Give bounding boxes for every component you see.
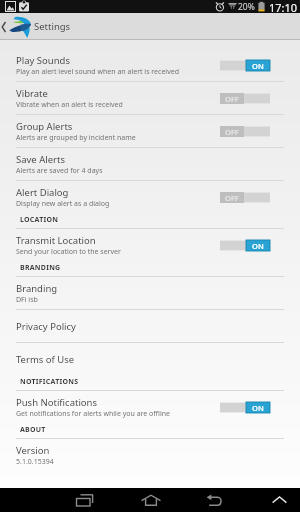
button[interactable]: Alert Dialog <box>0 181 300 213</box>
staticText: Alert Dialog <box>16 186 69 199</box>
staticText: NOTIFICATIONS <box>20 377 79 387</box>
staticText: Get notifications for alerts while you a… <box>16 409 171 419</box>
button[interactable]: On <box>220 240 270 251</box>
button[interactable]: Off <box>220 126 270 137</box>
staticText: Alerts are grouped by incident name <box>16 133 136 143</box>
staticText: LOCATION <box>20 215 59 225</box>
button[interactable]: Transmit Location <box>0 229 300 261</box>
staticText: Play an alert level sound when an alert … <box>16 67 179 77</box>
button[interactable]: Branding <box>0 277 300 309</box>
staticText: ABOUT <box>20 425 46 435</box>
button[interactable]: Navigate up <box>0 13 300 40</box>
staticText: Save Alerts <box>16 153 65 166</box>
button[interactable]: Off <box>220 93 270 104</box>
staticText: ON <box>252 61 264 71</box>
staticText: Alerts are saved for 4 days <box>16 166 103 176</box>
staticText: Terms of Use <box>16 353 75 366</box>
staticText: Vibrate when an alert is received <box>16 100 123 110</box>
button[interactable]: On <box>220 402 270 413</box>
staticText: Transmit Location <box>16 234 96 247</box>
staticText: Version <box>16 444 50 457</box>
staticText: OFF <box>225 127 239 137</box>
button[interactable]: Off <box>220 192 270 203</box>
button[interactable]: Back <box>193 488 237 512</box>
button[interactable]: Play Sounds <box>0 49 300 81</box>
staticText: Branding <box>16 282 58 295</box>
button[interactable]: Home <box>129 488 173 512</box>
staticText: 20% <box>238 1 255 13</box>
button[interactable]: Version <box>0 439 300 471</box>
button[interactable]: Push Notifications <box>0 391 300 423</box>
staticText: Privacy Policy <box>16 320 76 333</box>
staticText: 5.1.0.15394 <box>16 457 54 467</box>
button[interactable]: Recent apps <box>62 488 106 512</box>
staticText: DFi isb <box>16 295 38 305</box>
staticText: ON <box>252 403 264 413</box>
button[interactable]: On <box>220 60 270 71</box>
staticText: Send your location to the server <box>16 247 121 257</box>
staticText: Play Sounds <box>16 54 70 67</box>
button[interactable]: Vibrate <box>0 82 300 114</box>
staticText: Push Notifications <box>16 396 98 409</box>
button[interactable]: Save Alerts <box>0 148 300 180</box>
staticText: 17:10 <box>269 0 298 13</box>
button[interactable]: Hide navigation bar <box>258 488 300 512</box>
staticText: Group Alerts <box>16 120 73 133</box>
staticText: ON <box>252 241 264 251</box>
staticText: Settings <box>34 20 71 33</box>
button[interactable]: Terms of Use <box>0 343 300 375</box>
staticText: OFF <box>225 94 239 104</box>
staticText: Vibrate <box>16 87 48 100</box>
staticText: Display new alert as a dialog <box>16 199 110 209</box>
button[interactable]: Privacy Policy <box>0 310 300 342</box>
staticText: OFF <box>225 193 239 203</box>
button[interactable]: Group Alerts <box>0 115 300 147</box>
staticText: BRANDING <box>20 263 61 273</box>
